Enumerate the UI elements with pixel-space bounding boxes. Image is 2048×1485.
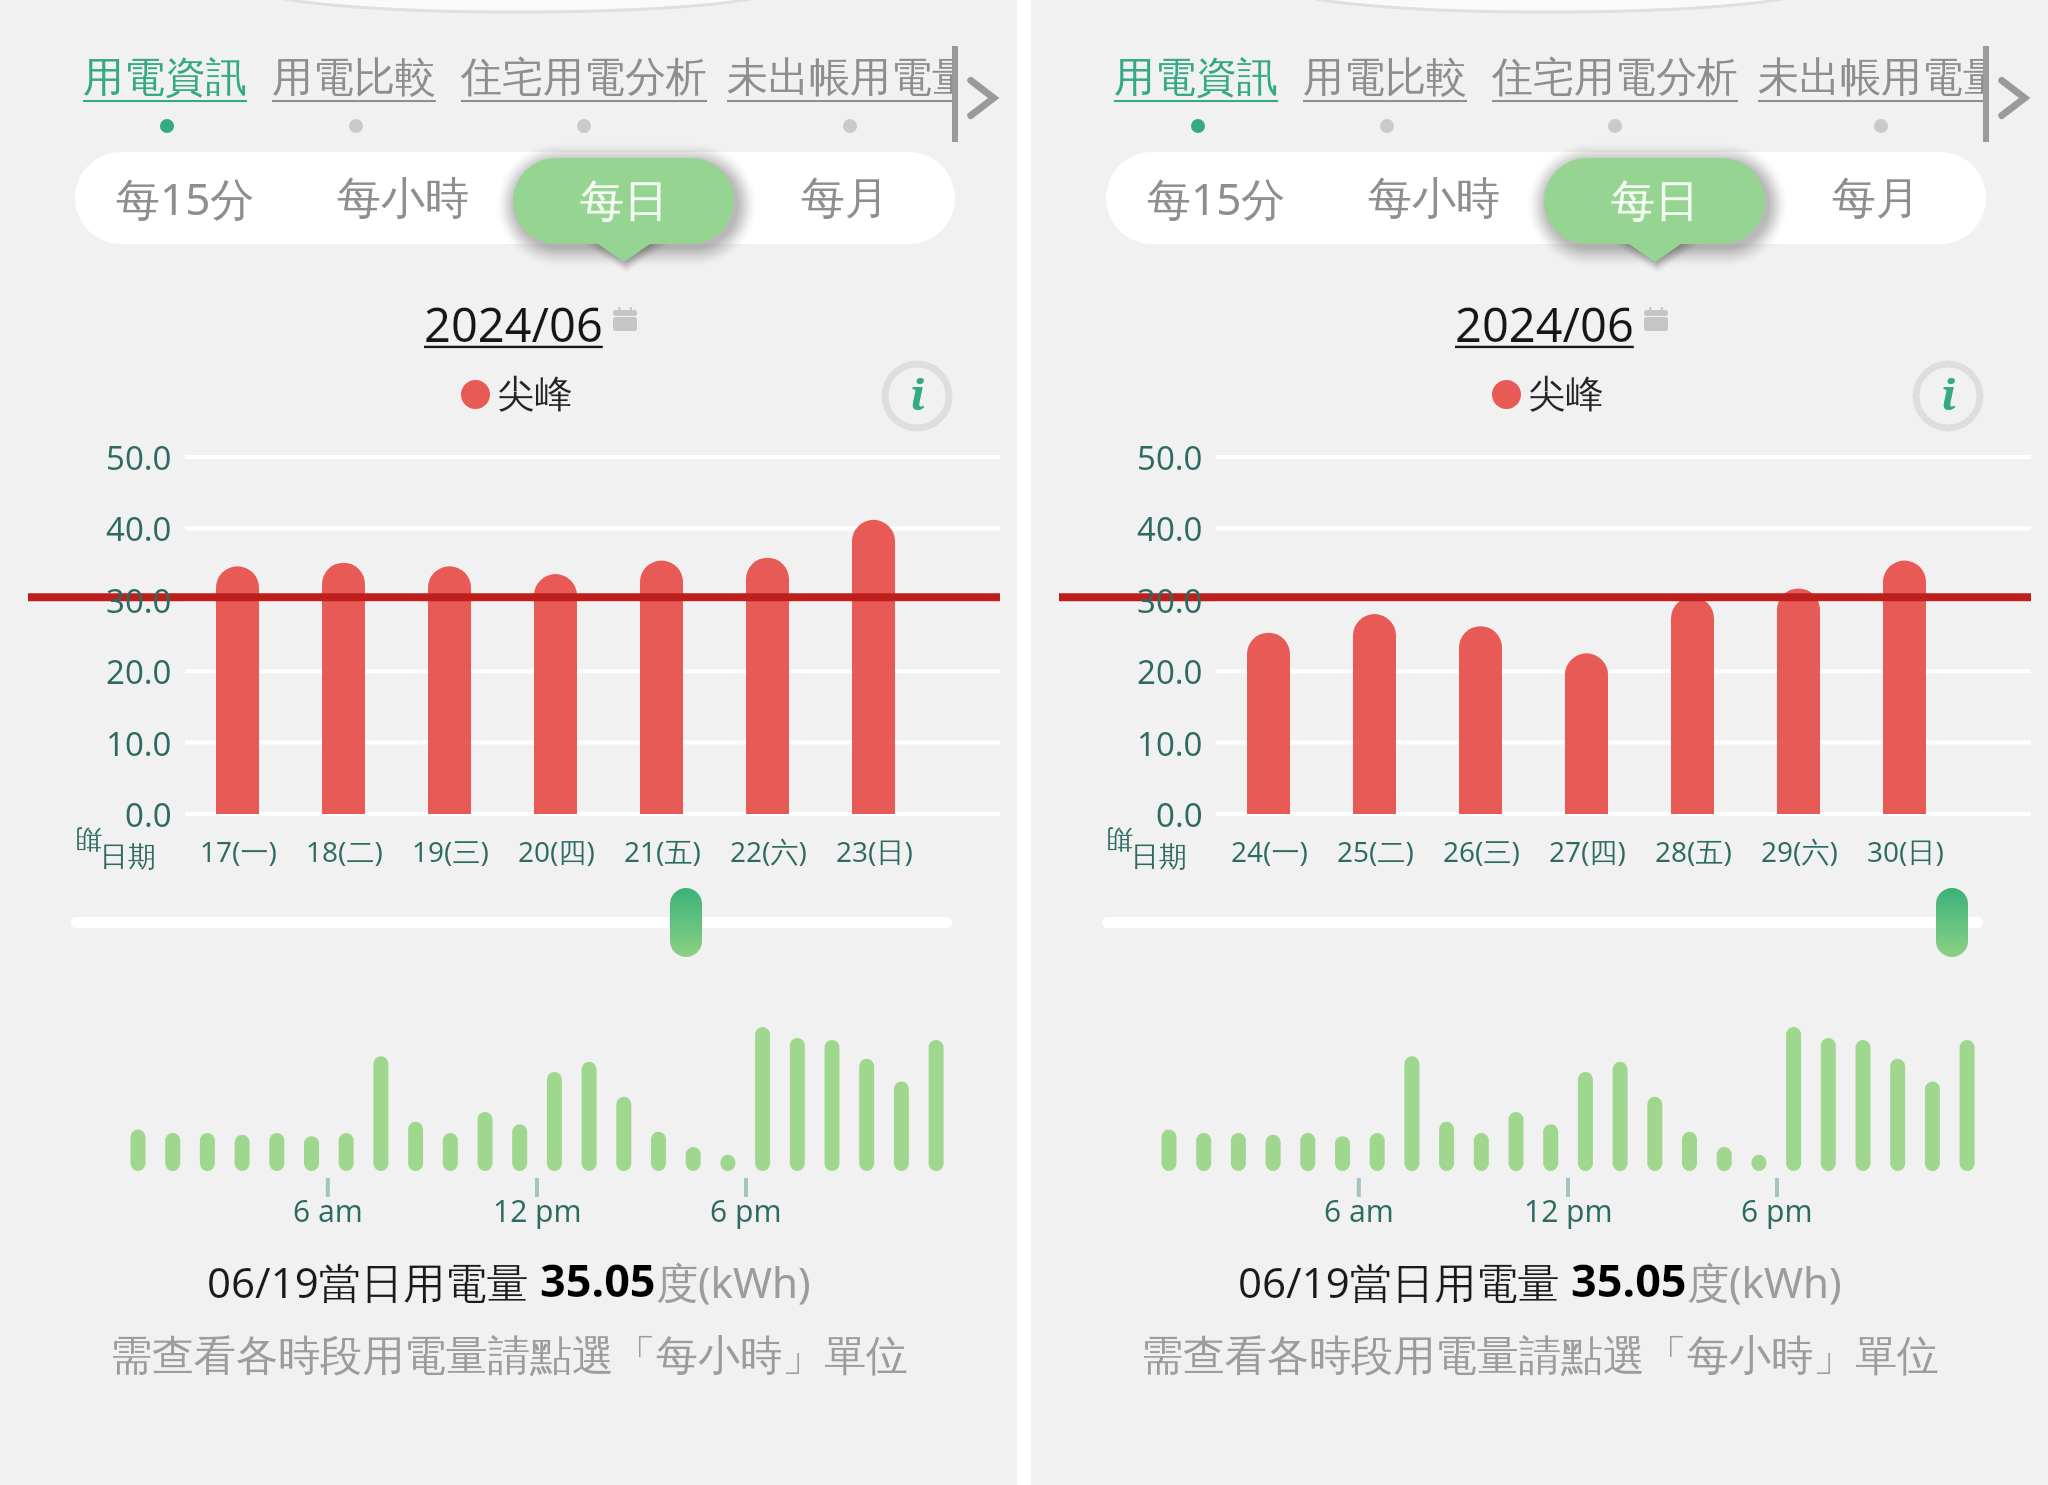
staticText: 35.05: [1571, 1249, 1687, 1310]
button[interactable]: 用電資訊: [1114, 52, 1278, 104]
staticText: 06/19當日用電量: [207, 1253, 540, 1310]
staticText: 30.0: [106, 578, 172, 623]
staticText: 40.0: [106, 506, 172, 551]
staticText: 每小時: [1368, 171, 1500, 226]
button[interactable]: 2024/06: [1455, 292, 1668, 356]
staticText: 每月: [801, 171, 889, 226]
button[interactable]: 未出帳用電量: [1758, 52, 2004, 104]
staticText: 18(二): [306, 832, 383, 870]
button[interactable]: Info: [881, 360, 953, 432]
staticText: 28(五): [1655, 832, 1732, 870]
staticText: 每15分: [116, 168, 255, 228]
staticText: 6 pm: [710, 1190, 782, 1231]
staticText: 12 pm: [1524, 1190, 1613, 1231]
staticText: 每15分: [1147, 168, 1286, 228]
button[interactable]: Info: [1912, 360, 1984, 432]
button[interactable]: 住宅用電分析: [1492, 52, 1738, 104]
button[interactable]: 用電比較: [1303, 52, 1467, 104]
button[interactable]: 未出帳用電量: [727, 52, 973, 104]
staticText: 29(六): [1761, 832, 1838, 870]
staticText: 用電資訊: [1114, 52, 1278, 104]
staticText: 每日: [580, 174, 668, 229]
staticText: i: [910, 365, 925, 422]
button[interactable]: More tabs: [1993, 76, 2037, 120]
staticText: 期: [75, 826, 102, 856]
staticText: 尖峰: [497, 370, 573, 418]
button[interactable]: Date range: [670, 888, 702, 957]
staticText: 6 am: [293, 1190, 363, 1231]
staticText: 25(二): [1337, 832, 1414, 870]
staticText: 住宅用電分析: [1492, 52, 1738, 104]
button[interactable]: 每月: [1786, 152, 1966, 244]
staticText: 6 pm: [1741, 1190, 1813, 1231]
staticText: 每日: [1611, 174, 1699, 229]
button[interactable]: 用電比較: [272, 52, 436, 104]
staticText: 用電比較: [272, 52, 436, 104]
staticText: 50.0: [1137, 435, 1203, 480]
button[interactable]: 每月: [755, 152, 935, 244]
staticText: 度(kWh): [656, 1253, 811, 1310]
staticText: 22(六): [730, 832, 807, 870]
staticText: 需查看各時段用電量請點選「每小時」單位: [110, 1330, 908, 1383]
button[interactable]: 每小時: [1344, 152, 1524, 244]
staticText: 度(kWh): [1687, 1253, 1842, 1310]
staticText: 尖峰: [1528, 370, 1604, 418]
staticText: 30(日): [1867, 832, 1944, 870]
button[interactable]: 每15分: [95, 152, 275, 244]
staticText: 期: [1106, 826, 1133, 856]
staticText: 2024/06: [1455, 292, 1634, 356]
button[interactable]: 每日: [1544, 158, 1765, 244]
staticText: 50.0: [106, 435, 172, 480]
staticText: 40.0: [1137, 506, 1203, 551]
button[interactable]: 2024/06: [424, 292, 637, 356]
staticText: 6 am: [1324, 1190, 1394, 1231]
staticText: 每小時: [337, 171, 469, 226]
staticText: 26(三): [1443, 832, 1520, 870]
staticText: 23(日): [836, 832, 913, 870]
button[interactable]: Date range: [1936, 888, 1968, 957]
staticText: 20.0: [1137, 649, 1203, 694]
button[interactable]: 用電資訊: [83, 52, 247, 104]
staticText: 未出帳用電量: [1758, 52, 2004, 104]
staticText: 用電資訊: [83, 52, 247, 104]
staticText: 21(五): [624, 832, 701, 870]
staticText: 每月: [1832, 171, 1920, 226]
staticText: 需查看各時段用電量請點選「每小時」單位: [1141, 1330, 1939, 1383]
staticText: 20(四): [518, 832, 595, 870]
staticText: 06/19當日用電量: [1238, 1253, 1571, 1310]
button[interactable]: 每小時: [313, 152, 493, 244]
button[interactable]: 每15分: [1126, 152, 1306, 244]
staticText: 20.0: [106, 649, 172, 694]
staticText: 日期: [1131, 839, 1187, 874]
staticText: 17(一): [200, 832, 277, 870]
staticText: 27(四): [1549, 832, 1626, 870]
staticText: 30.0: [1137, 578, 1203, 623]
staticText: 19(三): [412, 832, 489, 870]
staticText: 10.0: [1137, 721, 1203, 766]
staticText: 未出帳用電量: [727, 52, 973, 104]
staticText: 0.0: [125, 792, 172, 837]
staticText: i: [1941, 365, 1956, 422]
staticText: 35.05: [540, 1249, 656, 1310]
staticText: 住宅用電分析: [461, 52, 707, 104]
staticText: 用電比較: [1303, 52, 1467, 104]
staticText: 24(一): [1231, 832, 1308, 870]
staticText: 0.0: [1156, 792, 1203, 837]
button[interactable]: 住宅用電分析: [461, 52, 707, 104]
staticText: 10.0: [106, 721, 172, 766]
staticText: 2024/06: [424, 292, 603, 356]
staticText: 12 pm: [493, 1190, 582, 1231]
button[interactable]: More tabs: [962, 76, 1006, 120]
button[interactable]: 每日: [513, 158, 734, 244]
staticText: 日期: [100, 839, 156, 874]
